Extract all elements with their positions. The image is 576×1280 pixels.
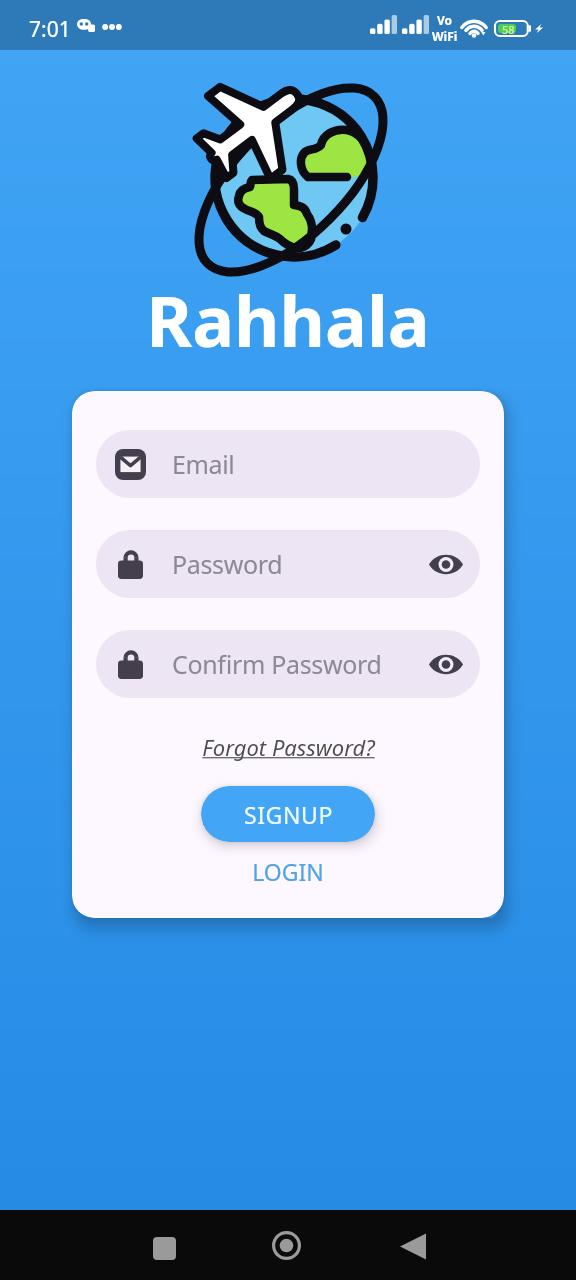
button[interactable]: Show password (412, 630, 480, 698)
button[interactable]: Recents (133, 1217, 196, 1280)
staticText: Email (172, 447, 235, 481)
button[interactable]: Forgot Password? (202, 732, 375, 762)
staticText: Confirm Password (172, 647, 382, 681)
staticText: 7:01 (29, 15, 71, 44)
button[interactable]: LOGIN (242, 856, 334, 887)
staticText: Password (172, 547, 283, 581)
staticText: Rahhala (146, 272, 430, 367)
button[interactable]: Confirm Password (96, 630, 480, 698)
staticText: WiFi (432, 28, 458, 44)
staticText: Vo (437, 12, 453, 28)
button[interactable]: Password (96, 530, 480, 598)
button[interactable]: SIGNUP (201, 786, 375, 842)
staticText: 58 (502, 22, 515, 37)
button[interactable]: Home (255, 1214, 318, 1277)
button[interactable]: Back (381, 1215, 444, 1278)
staticText: SIGNUP (244, 799, 333, 830)
button[interactable]: Email (96, 430, 480, 498)
button[interactable]: Show password (412, 530, 480, 598)
